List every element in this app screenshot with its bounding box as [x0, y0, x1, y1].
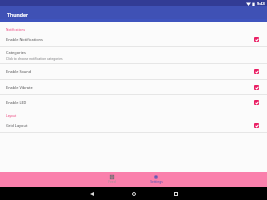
button[interactable]: Enable Sound — [0, 64, 267, 79]
button[interactable]: Feed — [102, 174, 122, 185]
staticText: Grid Layout — [6, 123, 28, 128]
staticText: Feed — [108, 180, 116, 184]
button[interactable]: Back — [87, 189, 96, 198]
staticText: Notifications — [6, 28, 25, 32]
staticText: Click to choose notification categories — [6, 57, 63, 61]
staticText: Enable Sound — [6, 69, 32, 74]
button[interactable]: Settings — [146, 174, 166, 185]
staticText: Layout — [6, 114, 17, 118]
button[interactable]: Enable LED — [0, 95, 267, 109]
staticText: Enable LED — [6, 100, 27, 105]
button[interactable]: Categories — [0, 47, 267, 63]
staticText: Settings — [150, 180, 163, 184]
button[interactable]: Recent apps — [171, 189, 180, 198]
staticText: Enable Vibrate — [6, 85, 33, 90]
staticText: Thunder — [7, 11, 29, 18]
staticText: Categories — [6, 50, 26, 55]
button[interactable]: Enable Vibrate — [0, 80, 267, 94]
staticText: Enable Notifications — [6, 37, 43, 42]
button[interactable]: Home — [129, 189, 138, 198]
button[interactable]: Enable Notifications — [0, 33, 267, 46]
button[interactable]: Grid Layout — [0, 119, 267, 132]
staticText: 9:43 — [257, 1, 265, 6]
